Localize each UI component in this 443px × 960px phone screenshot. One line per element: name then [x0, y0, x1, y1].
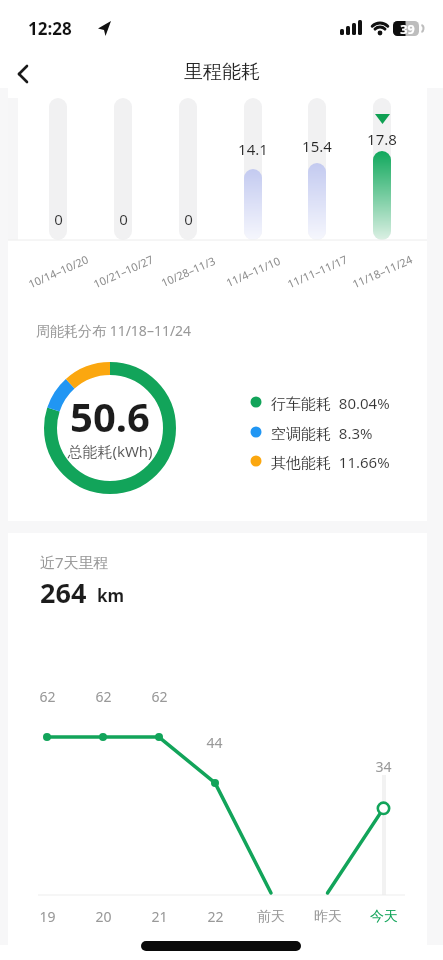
button[interactable]: 昨天 — [218, 901, 438, 932]
staticText: 15.4 — [302, 136, 332, 156]
staticText: 20 — [95, 907, 112, 926]
staticText: 39 — [400, 21, 415, 38]
staticText: 近7天里程 — [40, 552, 109, 572]
staticText: 10/28–11/3 — [159, 253, 218, 290]
button[interactable] — [6, 56, 42, 92]
staticText: 264 — [40, 574, 87, 611]
button[interactable]: 前天 — [161, 901, 381, 932]
button[interactable]: 21 — [49, 901, 269, 932]
staticText: 12:28 — [28, 17, 72, 40]
staticText: 0 — [119, 209, 128, 229]
staticText: 17.8 — [367, 129, 397, 149]
button[interactable]: 今天 — [274, 901, 443, 932]
staticText: 62 — [39, 687, 56, 706]
staticText: 空调能耗 8.3% — [271, 423, 373, 443]
button[interactable]: 20 — [0, 901, 213, 932]
staticText: 50.6 — [70, 389, 150, 443]
staticText: 总能耗(kWh) — [67, 441, 153, 461]
staticText: 其他能耗 11.66% — [271, 452, 390, 472]
staticText: 里程能耗 — [184, 60, 260, 84]
staticText: 10/21–10/27 — [91, 251, 156, 291]
button[interactable]: 22 — [105, 901, 325, 932]
staticText: 21 — [151, 907, 168, 926]
staticText: 11/4–11/10 — [224, 253, 283, 290]
staticText: 34 — [375, 757, 392, 776]
staticText: 11/18–11/24 — [350, 251, 415, 291]
staticText: 62 — [95, 687, 112, 706]
staticText: 10/14–10/20 — [26, 251, 91, 291]
staticText: 19 — [39, 907, 56, 926]
staticText: 昨天 — [314, 908, 342, 926]
staticText: 行车能耗 80.04% — [271, 393, 390, 413]
staticText: 14.1 — [238, 139, 268, 159]
staticText: 11/11–11/17 — [285, 251, 350, 291]
staticText: 62 — [151, 687, 168, 706]
staticText: 0 — [54, 209, 63, 229]
staticText: km — [97, 584, 125, 607]
staticText: 周能耗分布 11/18–11/24 — [36, 321, 192, 340]
staticText: 44 — [206, 733, 223, 752]
button[interactable]: 19 — [0, 901, 157, 932]
staticText: 今天 — [370, 908, 398, 926]
staticText: 0 — [184, 209, 193, 229]
staticText: 22 — [207, 907, 224, 926]
staticText: 前天 — [257, 908, 285, 926]
